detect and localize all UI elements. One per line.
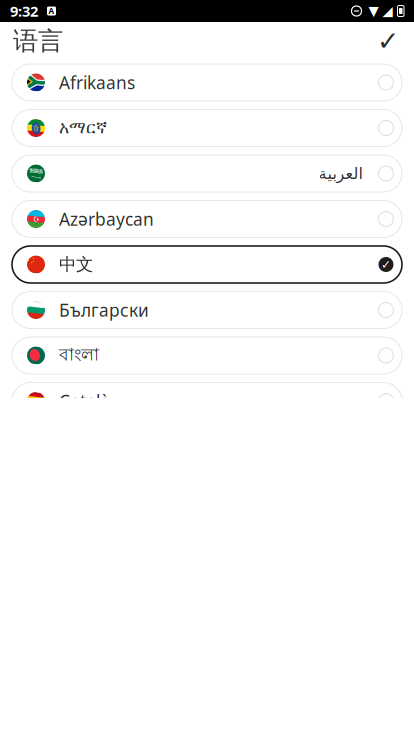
button[interactable]: 🇪🇸: [12, 382, 402, 419]
staticText: 🇦🇿: [22, 206, 50, 232]
staticText: 🇨🇳: [22, 252, 50, 277]
staticText: 9:32: [10, 1, 38, 21]
staticText: 🇪🇸: [22, 388, 50, 414]
button[interactable]: 🇨🇳: [12, 246, 402, 283]
button[interactable]: 🇧🇩: [12, 337, 402, 374]
staticText: አማርኛ: [59, 119, 107, 136]
staticText: A: [48, 6, 54, 16]
staticText: 🇪🇹: [22, 115, 50, 141]
staticText: 语言: [13, 25, 63, 56]
staticText: 🇧🇩: [22, 343, 50, 368]
staticText: ✓: [377, 26, 399, 56]
staticText: ▼: [368, 3, 378, 18]
button[interactable]: 🇦🇿: [12, 200, 402, 237]
staticText: Azərbaycan: [59, 207, 154, 230]
button[interactable]: Confirm: [368, 21, 408, 61]
button[interactable]: 🇧🇬: [12, 291, 402, 328]
staticText: 🇸🇦: [22, 161, 50, 186]
staticText: Български: [59, 298, 149, 321]
staticText: 🇧🇬: [22, 297, 50, 323]
staticText: Català: [59, 389, 110, 412]
staticText: 中文: [59, 254, 93, 275]
button[interactable]: 🇸🇦: [12, 155, 402, 192]
staticText: 🇿🇦: [22, 70, 50, 95]
staticText: বাংলা: [59, 344, 99, 367]
button[interactable]: 🇿🇦: [12, 64, 402, 101]
staticText: Afrikaans: [59, 71, 135, 94]
staticText: ◢: [382, 3, 392, 18]
staticText: ✓: [381, 258, 391, 271]
staticText: العربية: [318, 164, 362, 183]
button[interactable]: 🇪🇹: [12, 109, 402, 146]
